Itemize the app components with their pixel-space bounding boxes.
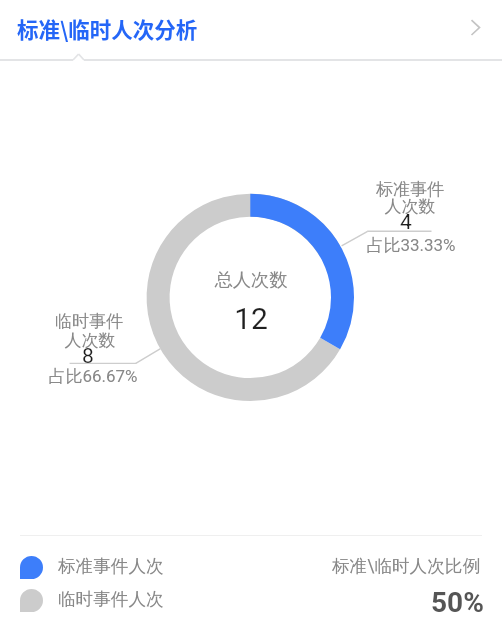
staticText: 占比33.33% — [311, 235, 502, 256]
staticText: 8 — [0, 344, 188, 369]
staticText: 总人次数 — [151, 268, 351, 291]
staticText: 标准\临时人次分析 — [17, 13, 198, 44]
other: More — [468, 17, 484, 38]
staticText: 人次数 — [0, 330, 190, 351]
button[interactable]: 临时事件人次 — [20, 589, 164, 612]
button[interactable]: 标准事件人次 — [20, 556, 164, 579]
staticText: 临时事件人次 — [58, 588, 164, 610]
staticText: 4 — [306, 210, 502, 235]
staticText: 人次数 — [310, 196, 502, 217]
staticText: 标准\临时人次比例 — [332, 555, 480, 577]
staticText: 12 — [151, 301, 351, 336]
staticText: 标准事件 — [310, 179, 502, 200]
staticText: 标准事件人次 — [58, 555, 164, 577]
staticText: 50% — [431, 586, 484, 619]
button[interactable]: 标准\临时人次分析 — [0, 0, 502, 58]
staticText: 临时事件 — [0, 311, 189, 332]
staticText: 占比66.67% — [0, 366, 193, 387]
